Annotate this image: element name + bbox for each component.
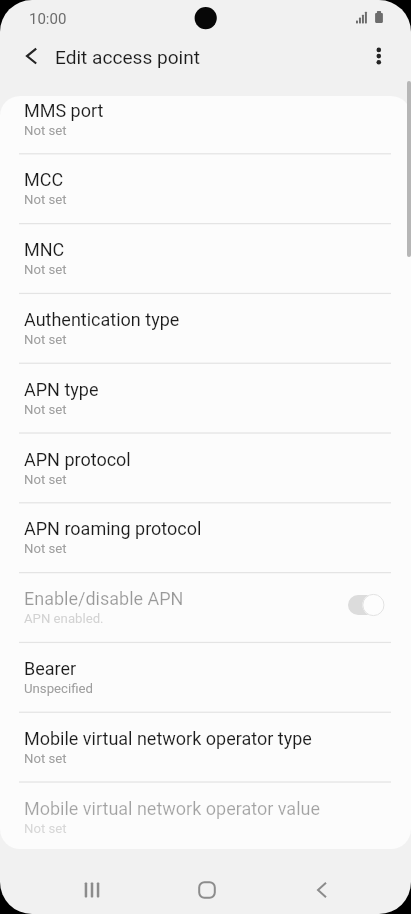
staticText: Authentication type xyxy=(24,309,180,330)
button[interactable]: MNC xyxy=(0,223,411,293)
button[interactable]: Mobile virtual network operator value xyxy=(0,782,411,852)
staticText: APN protocol xyxy=(24,449,131,470)
staticText: MMS port xyxy=(24,100,104,121)
staticText: MCC xyxy=(24,169,64,190)
staticText: 10:00 xyxy=(29,10,67,28)
staticText: APN enabled. xyxy=(24,611,104,626)
staticText: Not set xyxy=(24,192,67,207)
staticText: APN roaming protocol xyxy=(24,518,202,539)
button[interactable]: APN protocol xyxy=(0,433,411,503)
button[interactable]: APN type xyxy=(0,363,411,433)
button[interactable]: Enable/disable APN xyxy=(0,572,411,642)
staticText: Not set xyxy=(24,751,67,766)
staticText: Unspecified xyxy=(24,681,93,696)
staticText: Not set xyxy=(24,123,67,138)
staticText: MNC xyxy=(24,239,65,260)
button[interactable]: APN roaming protocol xyxy=(0,502,411,572)
button[interactable]: Home xyxy=(176,859,238,914)
button[interactable]: Enable or disable APN xyxy=(346,593,385,618)
button[interactable]: Back xyxy=(291,859,353,914)
staticText: Bearer xyxy=(24,658,77,679)
button[interactable]: MCC xyxy=(0,153,411,223)
staticText: Not set xyxy=(24,262,67,277)
button[interactable]: Bearer xyxy=(0,642,411,712)
staticText: Not set xyxy=(24,472,67,487)
staticText: Not set xyxy=(24,402,67,417)
staticText: Edit access point xyxy=(55,46,201,68)
button[interactable]: Mobile virtual network operator type xyxy=(0,712,411,782)
button[interactable]: More options xyxy=(357,34,401,78)
staticText: Not set xyxy=(24,541,67,556)
button[interactable]: Authentication type xyxy=(0,293,411,363)
button[interactable]: Recent apps xyxy=(61,859,123,914)
staticText: Not set xyxy=(24,821,67,836)
staticText: APN type xyxy=(24,379,99,400)
staticText: Mobile virtual network operator type xyxy=(24,728,312,749)
staticText: Mobile virtual network operator value xyxy=(24,798,321,819)
button[interactable]: MMS port xyxy=(0,84,411,154)
staticText: Not set xyxy=(24,332,67,347)
button[interactable]: Navigate up xyxy=(9,34,53,78)
staticText: Enable/disable APN xyxy=(24,588,184,609)
